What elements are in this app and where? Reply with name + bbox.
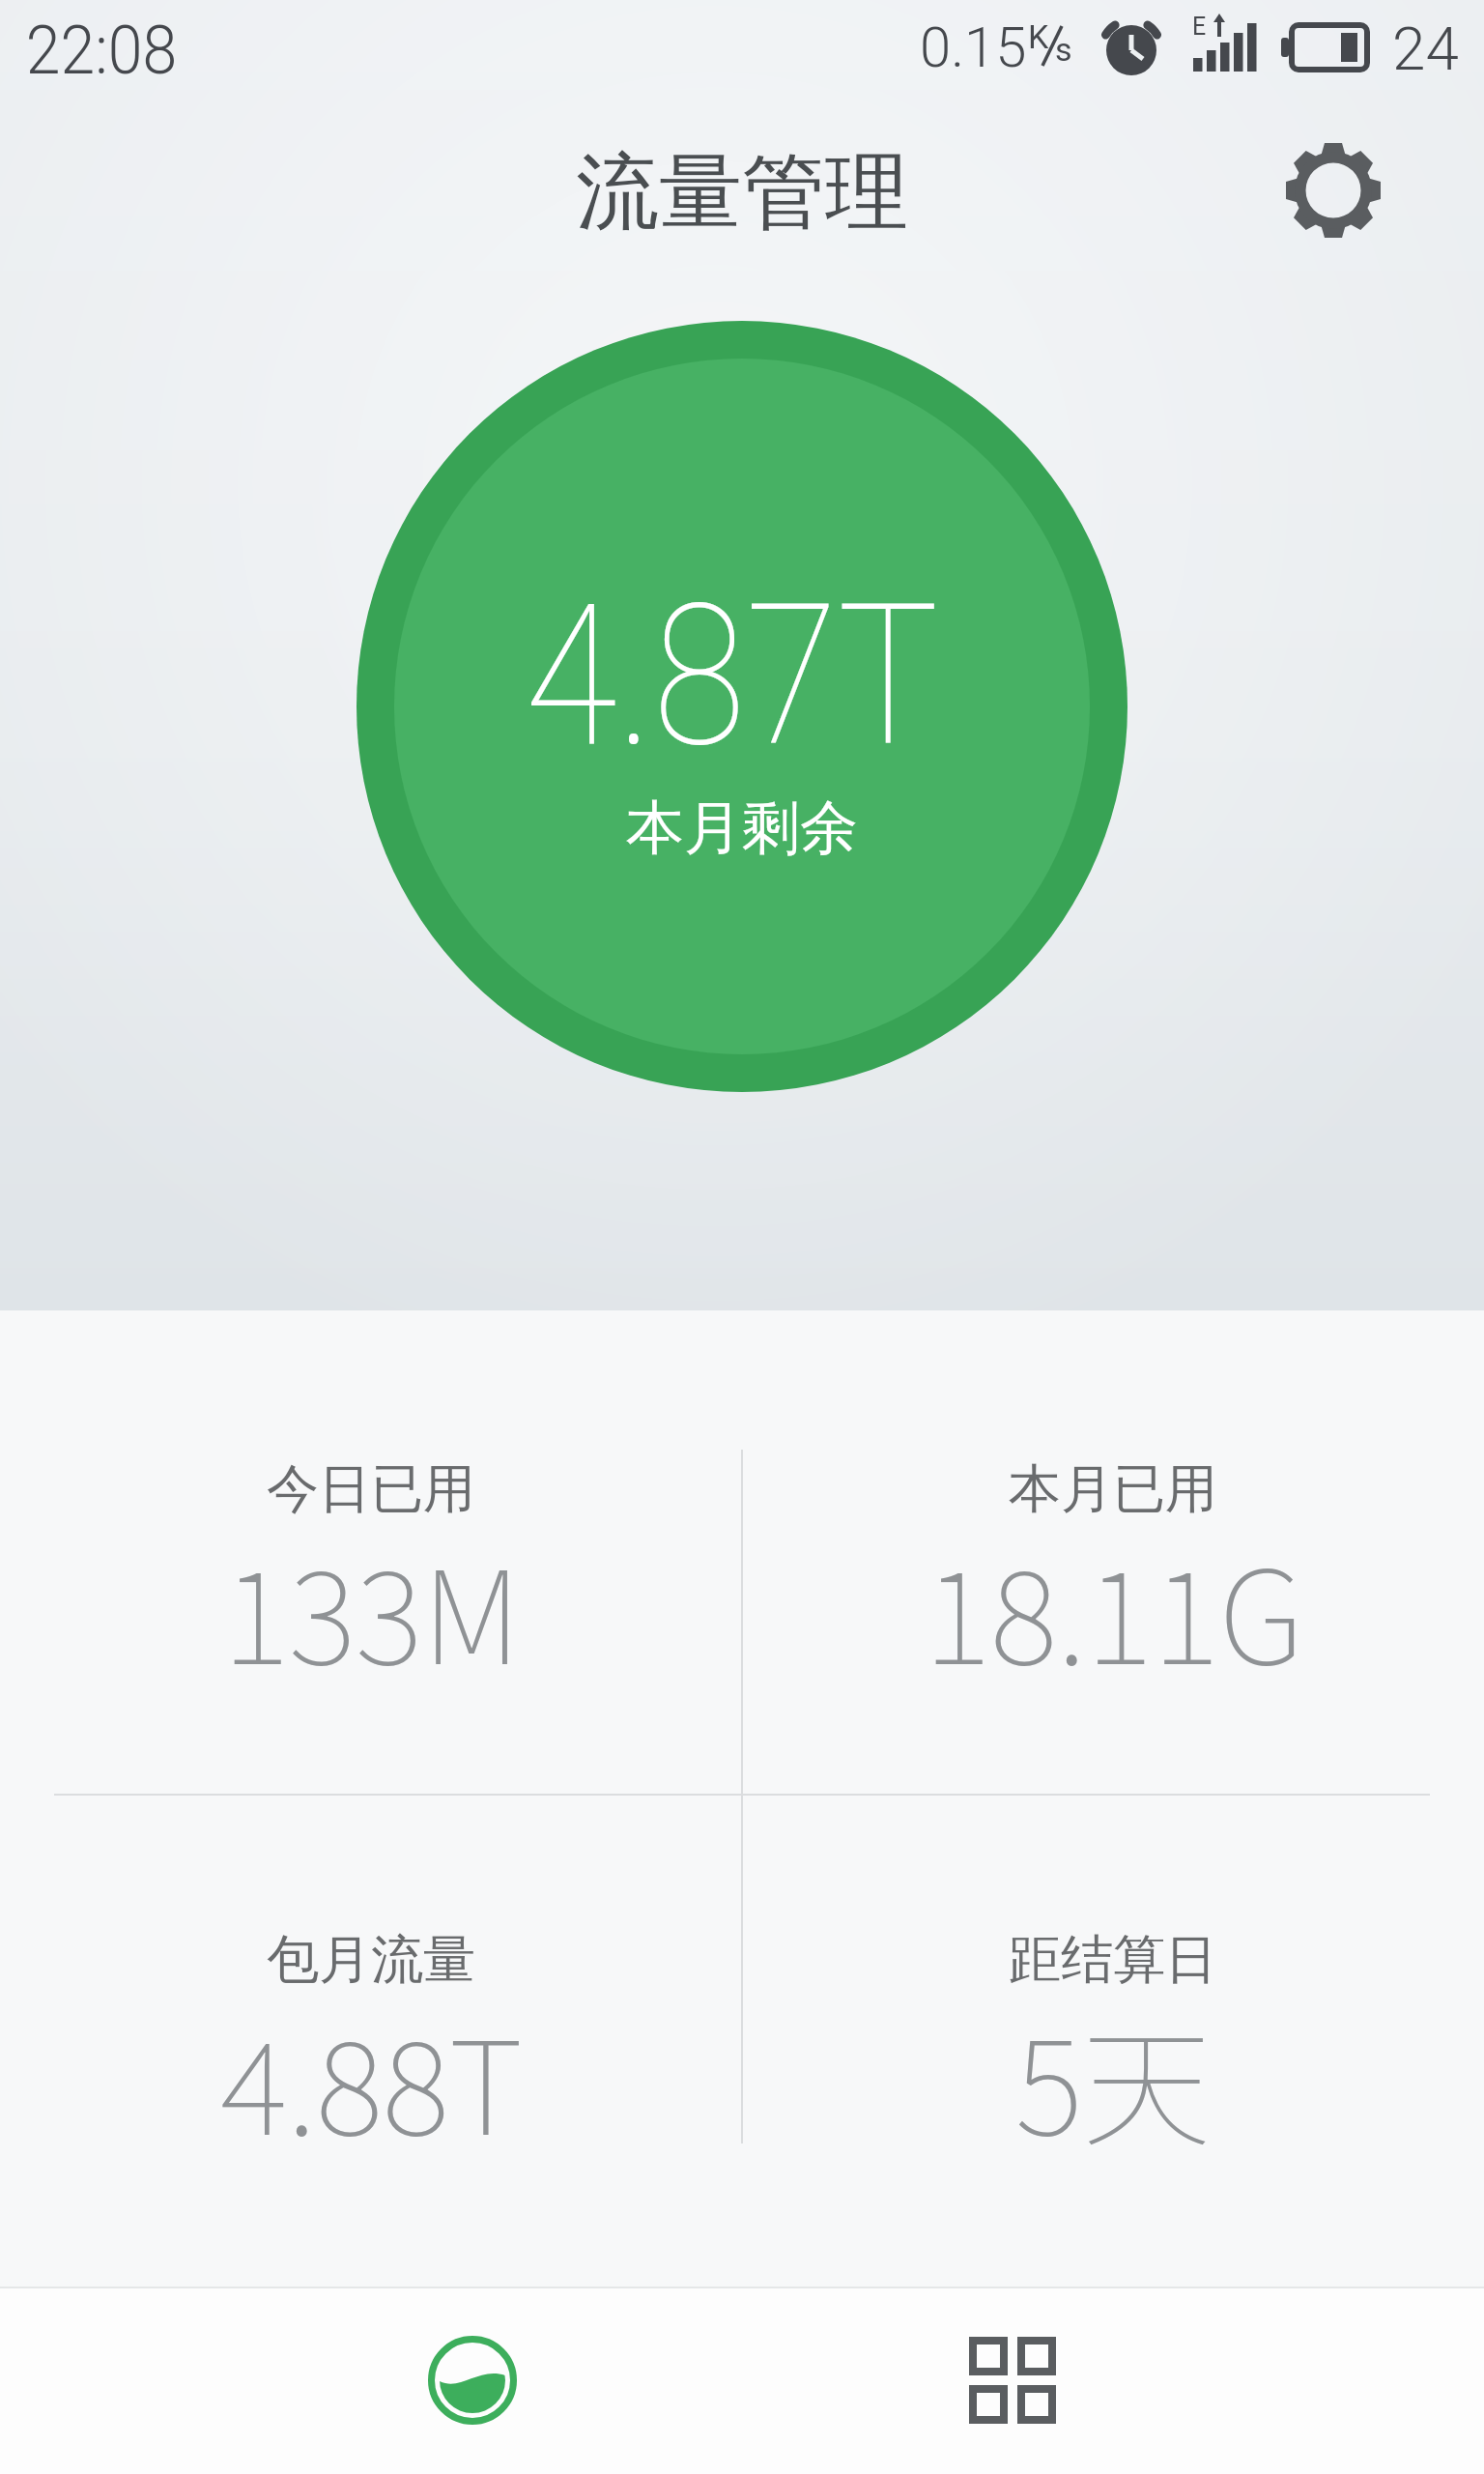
staticText: 133M bbox=[222, 1514, 521, 1702]
button[interactable] bbox=[357, 321, 1127, 1092]
button[interactable] bbox=[1275, 132, 1391, 248]
staticText: E bbox=[1192, 13, 1207, 41]
button[interactable] bbox=[897, 2303, 1128, 2458]
staticText: K bbox=[1028, 17, 1049, 56]
staticText: 4.88T bbox=[220, 1985, 523, 2172]
staticText: 本月已用 bbox=[1009, 1456, 1217, 1522]
staticText: 包月流量 bbox=[267, 1927, 475, 1993]
staticText: s bbox=[1055, 30, 1072, 69]
staticText: 5天 bbox=[1015, 1985, 1211, 2172]
staticText: 4.87T bbox=[525, 561, 939, 791]
staticText: 0.15 bbox=[920, 14, 1027, 80]
staticText: 本月剩余 bbox=[626, 791, 858, 865]
staticText: 距结算日 bbox=[1009, 1927, 1217, 1993]
staticText: 流量管理 bbox=[576, 140, 908, 245]
staticText: 24 bbox=[1392, 14, 1459, 84]
staticText: 22:08 bbox=[26, 11, 178, 90]
staticText: 今日已用 bbox=[267, 1456, 475, 1522]
staticText: 18.11G bbox=[924, 1514, 1303, 1702]
button[interactable] bbox=[357, 2303, 588, 2458]
